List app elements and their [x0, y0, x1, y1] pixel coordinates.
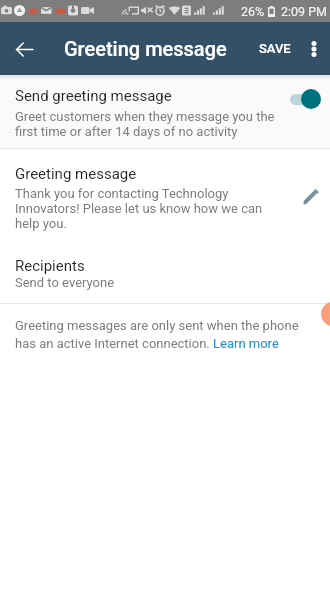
button[interactable]: Back: [0, 25, 48, 73]
staticText: Send to everyone: [15, 275, 115, 290]
button[interactable]: Edit greeting message: [297, 183, 325, 211]
button[interactable]: Compose message: [321, 302, 330, 326]
button[interactable]: Toggle send greeting message: [290, 89, 321, 109]
staticText: Greet customers when they message you th…: [15, 109, 284, 139]
staticText: 2:09 PM: [281, 4, 328, 19]
button[interactable]: Recipients: [0, 245, 330, 290]
button[interactable]: SAVE: [251, 29, 299, 68]
staticText: Send greeting message: [15, 87, 172, 105]
staticText: Greeting messages are only sent when the…: [15, 318, 318, 351]
staticText: Thank you for contacting Technology Inno…: [15, 186, 270, 231]
staticText: Recipients: [15, 257, 85, 275]
button[interactable]: More options: [299, 34, 329, 64]
button[interactable]: Greeting message: [0, 149, 330, 231]
staticText: 26%: [241, 4, 265, 19]
staticText: Greeting message: [15, 165, 137, 183]
staticText: SAVE: [259, 41, 291, 56]
button[interactable]: Send greeting message: [0, 75, 330, 139]
staticText: Greeting message: [64, 37, 227, 60]
